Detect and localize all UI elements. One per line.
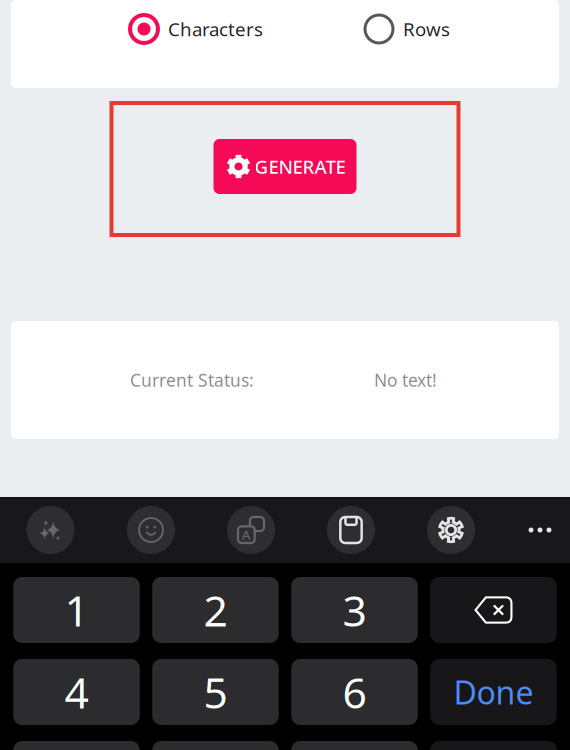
staticText: 2 xyxy=(203,582,227,638)
button[interactable]: Rows xyxy=(365,8,450,50)
staticText: Done xyxy=(453,671,533,713)
button[interactable]: 5 xyxy=(152,659,279,725)
button[interactable]: Delete xyxy=(430,577,557,643)
button[interactable]: GENERATE xyxy=(213,139,356,194)
button[interactable]: 8 xyxy=(152,741,279,750)
button[interactable]: Return xyxy=(430,741,557,750)
button[interactable]: 4 xyxy=(13,659,140,725)
button[interactable]: Emoji xyxy=(127,506,175,554)
staticText: 3 xyxy=(342,582,366,638)
button[interactable]: 2 xyxy=(152,577,279,643)
button[interactable]: More options xyxy=(518,506,562,554)
staticText: 5 xyxy=(203,664,227,720)
button[interactable]: 1 xyxy=(13,577,140,643)
button[interactable]: 7 xyxy=(13,741,140,750)
staticText: 1 xyxy=(64,582,88,638)
staticText: 6 xyxy=(342,664,366,720)
staticText: GENERATE xyxy=(254,154,345,179)
staticText: 4 xyxy=(64,664,88,720)
button[interactable]: Characters xyxy=(130,8,263,50)
button[interactable]: 9 xyxy=(291,741,418,750)
button[interactable]: Translate xyxy=(227,506,275,554)
button[interactable]: Settings xyxy=(427,506,475,554)
staticText: No text! xyxy=(374,368,437,391)
staticText: Current Status: xyxy=(130,368,254,391)
button[interactable]: 3 xyxy=(291,577,418,643)
staticText: Rows xyxy=(403,17,450,41)
button[interactable]: Save xyxy=(327,506,375,554)
staticText: Characters xyxy=(168,17,263,41)
button[interactable]: 6 xyxy=(291,659,418,725)
staticText: A xyxy=(242,526,251,543)
button[interactable]: Done xyxy=(430,659,557,725)
button[interactable]: Effects xyxy=(26,506,74,554)
